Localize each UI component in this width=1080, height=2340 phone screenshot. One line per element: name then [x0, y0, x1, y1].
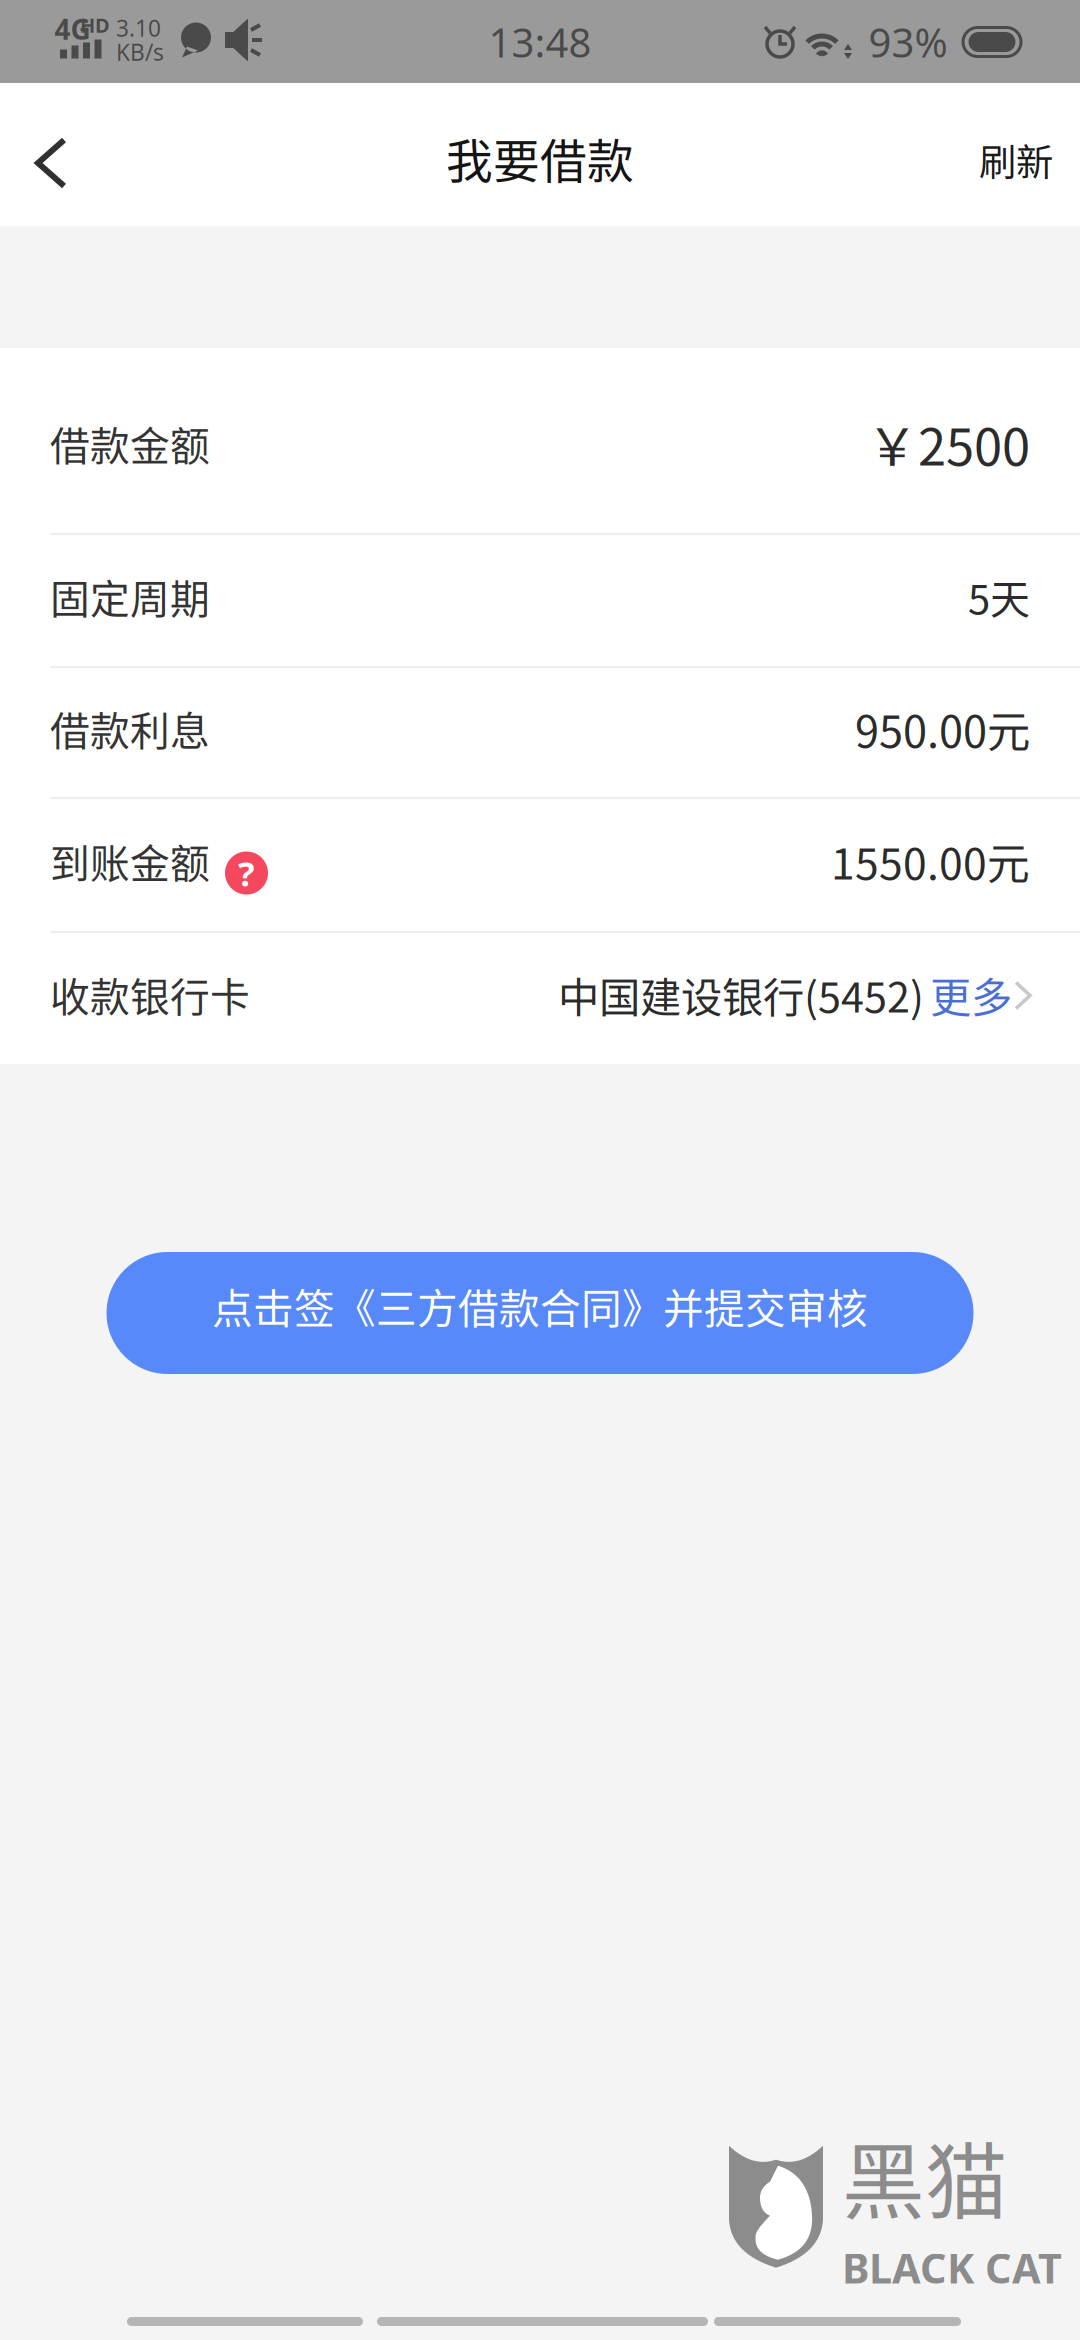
button[interactable]: Back [0, 91, 102, 234]
staticText: BLACK CAT [842, 2240, 1062, 2295]
staticText: 950.00元 [855, 697, 1030, 760]
staticText: 3.10 [116, 13, 161, 43]
button[interactable]: 收款银行卡 [0, 933, 1080, 1064]
staticText: 借款金额 [50, 415, 210, 472]
button[interactable]: 点击签《三方借款合同》并提交审核 [106, 1252, 973, 1374]
staticText: 点击签《三方借款合同》并提交审核 [212, 1277, 868, 1335]
staticText: 我要借款 [446, 124, 634, 192]
staticText: 固定周期 [50, 568, 210, 625]
button[interactable]: 刷新 [913, 88, 1053, 231]
staticText: 5天 [968, 567, 1030, 625]
staticText: 收款银行卡 [50, 966, 250, 1023]
staticText: KB/s [116, 37, 164, 67]
staticText: 1550.00元 [831, 830, 1030, 892]
staticText: 黑猫 [842, 2116, 1008, 2236]
staticText: ￥2500 [867, 407, 1030, 480]
staticText: 4G [54, 10, 90, 48]
staticText: 借款利息 [50, 700, 210, 757]
staticText: 更多 [930, 965, 1012, 1024]
staticText: 93% [868, 15, 947, 68]
staticText: HD [80, 12, 110, 38]
staticText: 刷新 [979, 133, 1053, 187]
staticText: 到账金额 [50, 832, 210, 890]
staticText: 13:48 [488, 15, 591, 68]
staticText: ? [238, 850, 255, 896]
staticText: 中国建设银行(5452) [558, 965, 924, 1024]
